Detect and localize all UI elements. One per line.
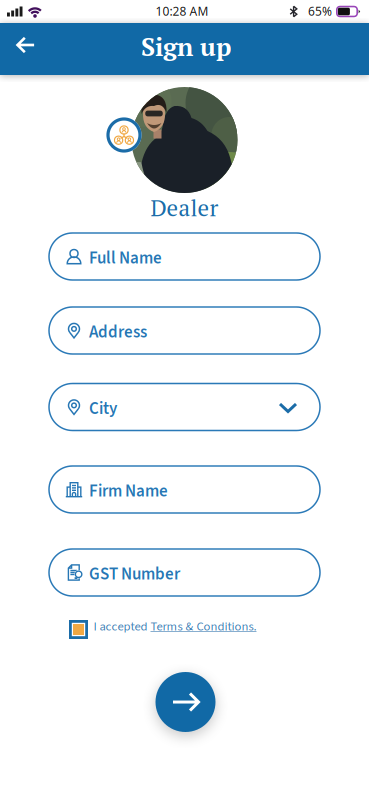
staticText: 65%: [308, 3, 332, 19]
staticText: 10:28 AM: [155, 3, 208, 19]
staticText: Address: [89, 320, 147, 344]
staticText: City: [89, 397, 117, 421]
button[interactable]: I accepted: [93, 617, 256, 635]
staticText: Full Name: [89, 246, 162, 270]
staticText: Terms & Conditions.: [150, 617, 256, 635]
staticText: GST Number: [89, 562, 180, 586]
button[interactable]: Continue: [155, 672, 215, 732]
button[interactable]: City: [49, 383, 320, 430]
button[interactable]: Dealer network: [106, 117, 141, 152]
button[interactable]: GST Number: [49, 549, 320, 596]
staticText: Dealer: [150, 192, 218, 223]
button[interactable]: Address: [49, 307, 320, 354]
button[interactable]: I accept the terms: [69, 620, 88, 639]
staticText: I accepted: [93, 617, 150, 635]
button[interactable]: Full Name: [49, 233, 320, 280]
staticText: Sign up: [141, 30, 231, 63]
button[interactable]: Firm Name: [49, 466, 320, 513]
staticText: Firm Name: [89, 479, 168, 503]
button[interactable]: Back: [8, 28, 42, 62]
